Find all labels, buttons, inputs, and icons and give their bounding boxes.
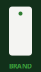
staticText: BRAND xyxy=(9,62,32,70)
